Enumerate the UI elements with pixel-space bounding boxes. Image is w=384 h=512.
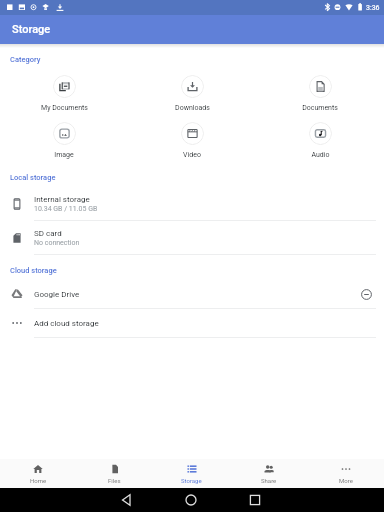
button[interactable]: Recent apps: [223, 488, 287, 512]
staticText: 10.34 GB / 11.05 GB: [34, 205, 98, 213]
button[interactable]: Audio: [256, 118, 384, 163]
staticText: 3:36: [366, 4, 380, 12]
staticText: Documents: [302, 104, 338, 112]
button[interactable]: Share: [230, 459, 307, 488]
button[interactable]: Remove account: [356, 284, 376, 304]
staticText: Cloud storage: [10, 266, 57, 275]
staticText: Share: [261, 477, 277, 484]
button[interactable]: Storage: [153, 459, 230, 488]
button[interactable]: Files: [76, 459, 153, 488]
staticText: Storage: [181, 477, 202, 484]
button[interactable]: Add cloud storage: [0, 309, 384, 338]
staticText: More: [339, 477, 353, 484]
button[interactable]: Documents: [256, 71, 384, 116]
button[interactable]: Video: [128, 118, 256, 163]
staticText: Files: [108, 477, 121, 484]
staticText: Add cloud storage: [34, 319, 384, 328]
staticText: Image: [54, 151, 74, 159]
staticText: SD card: [34, 229, 62, 238]
staticText: Home: [30, 477, 47, 484]
staticText: Internal storage: [34, 195, 90, 204]
staticText: Audio: [311, 151, 330, 159]
button[interactable]: Image: [0, 118, 128, 163]
button[interactable]: Downloads: [128, 71, 256, 116]
button[interactable]: More: [307, 459, 384, 488]
staticText: Storage: [12, 23, 51, 36]
button[interactable]: My Documents: [0, 71, 128, 116]
button[interactable]: Home: [0, 459, 76, 488]
button[interactable]: Google Drive: [0, 280, 384, 309]
staticText: Downloads: [175, 104, 210, 112]
staticText: Local storage: [10, 173, 56, 182]
staticText: No connection: [34, 239, 80, 247]
button[interactable]: Internal storage: [0, 187, 384, 221]
button[interactable]: SD card: [0, 221, 384, 255]
staticText: Google Drive: [34, 290, 356, 299]
staticText: Category: [10, 55, 41, 64]
staticText: Video: [183, 151, 201, 159]
button[interactable]: Home: [159, 488, 223, 512]
button[interactable]: Back: [95, 488, 159, 512]
staticText: My Documents: [41, 104, 88, 112]
